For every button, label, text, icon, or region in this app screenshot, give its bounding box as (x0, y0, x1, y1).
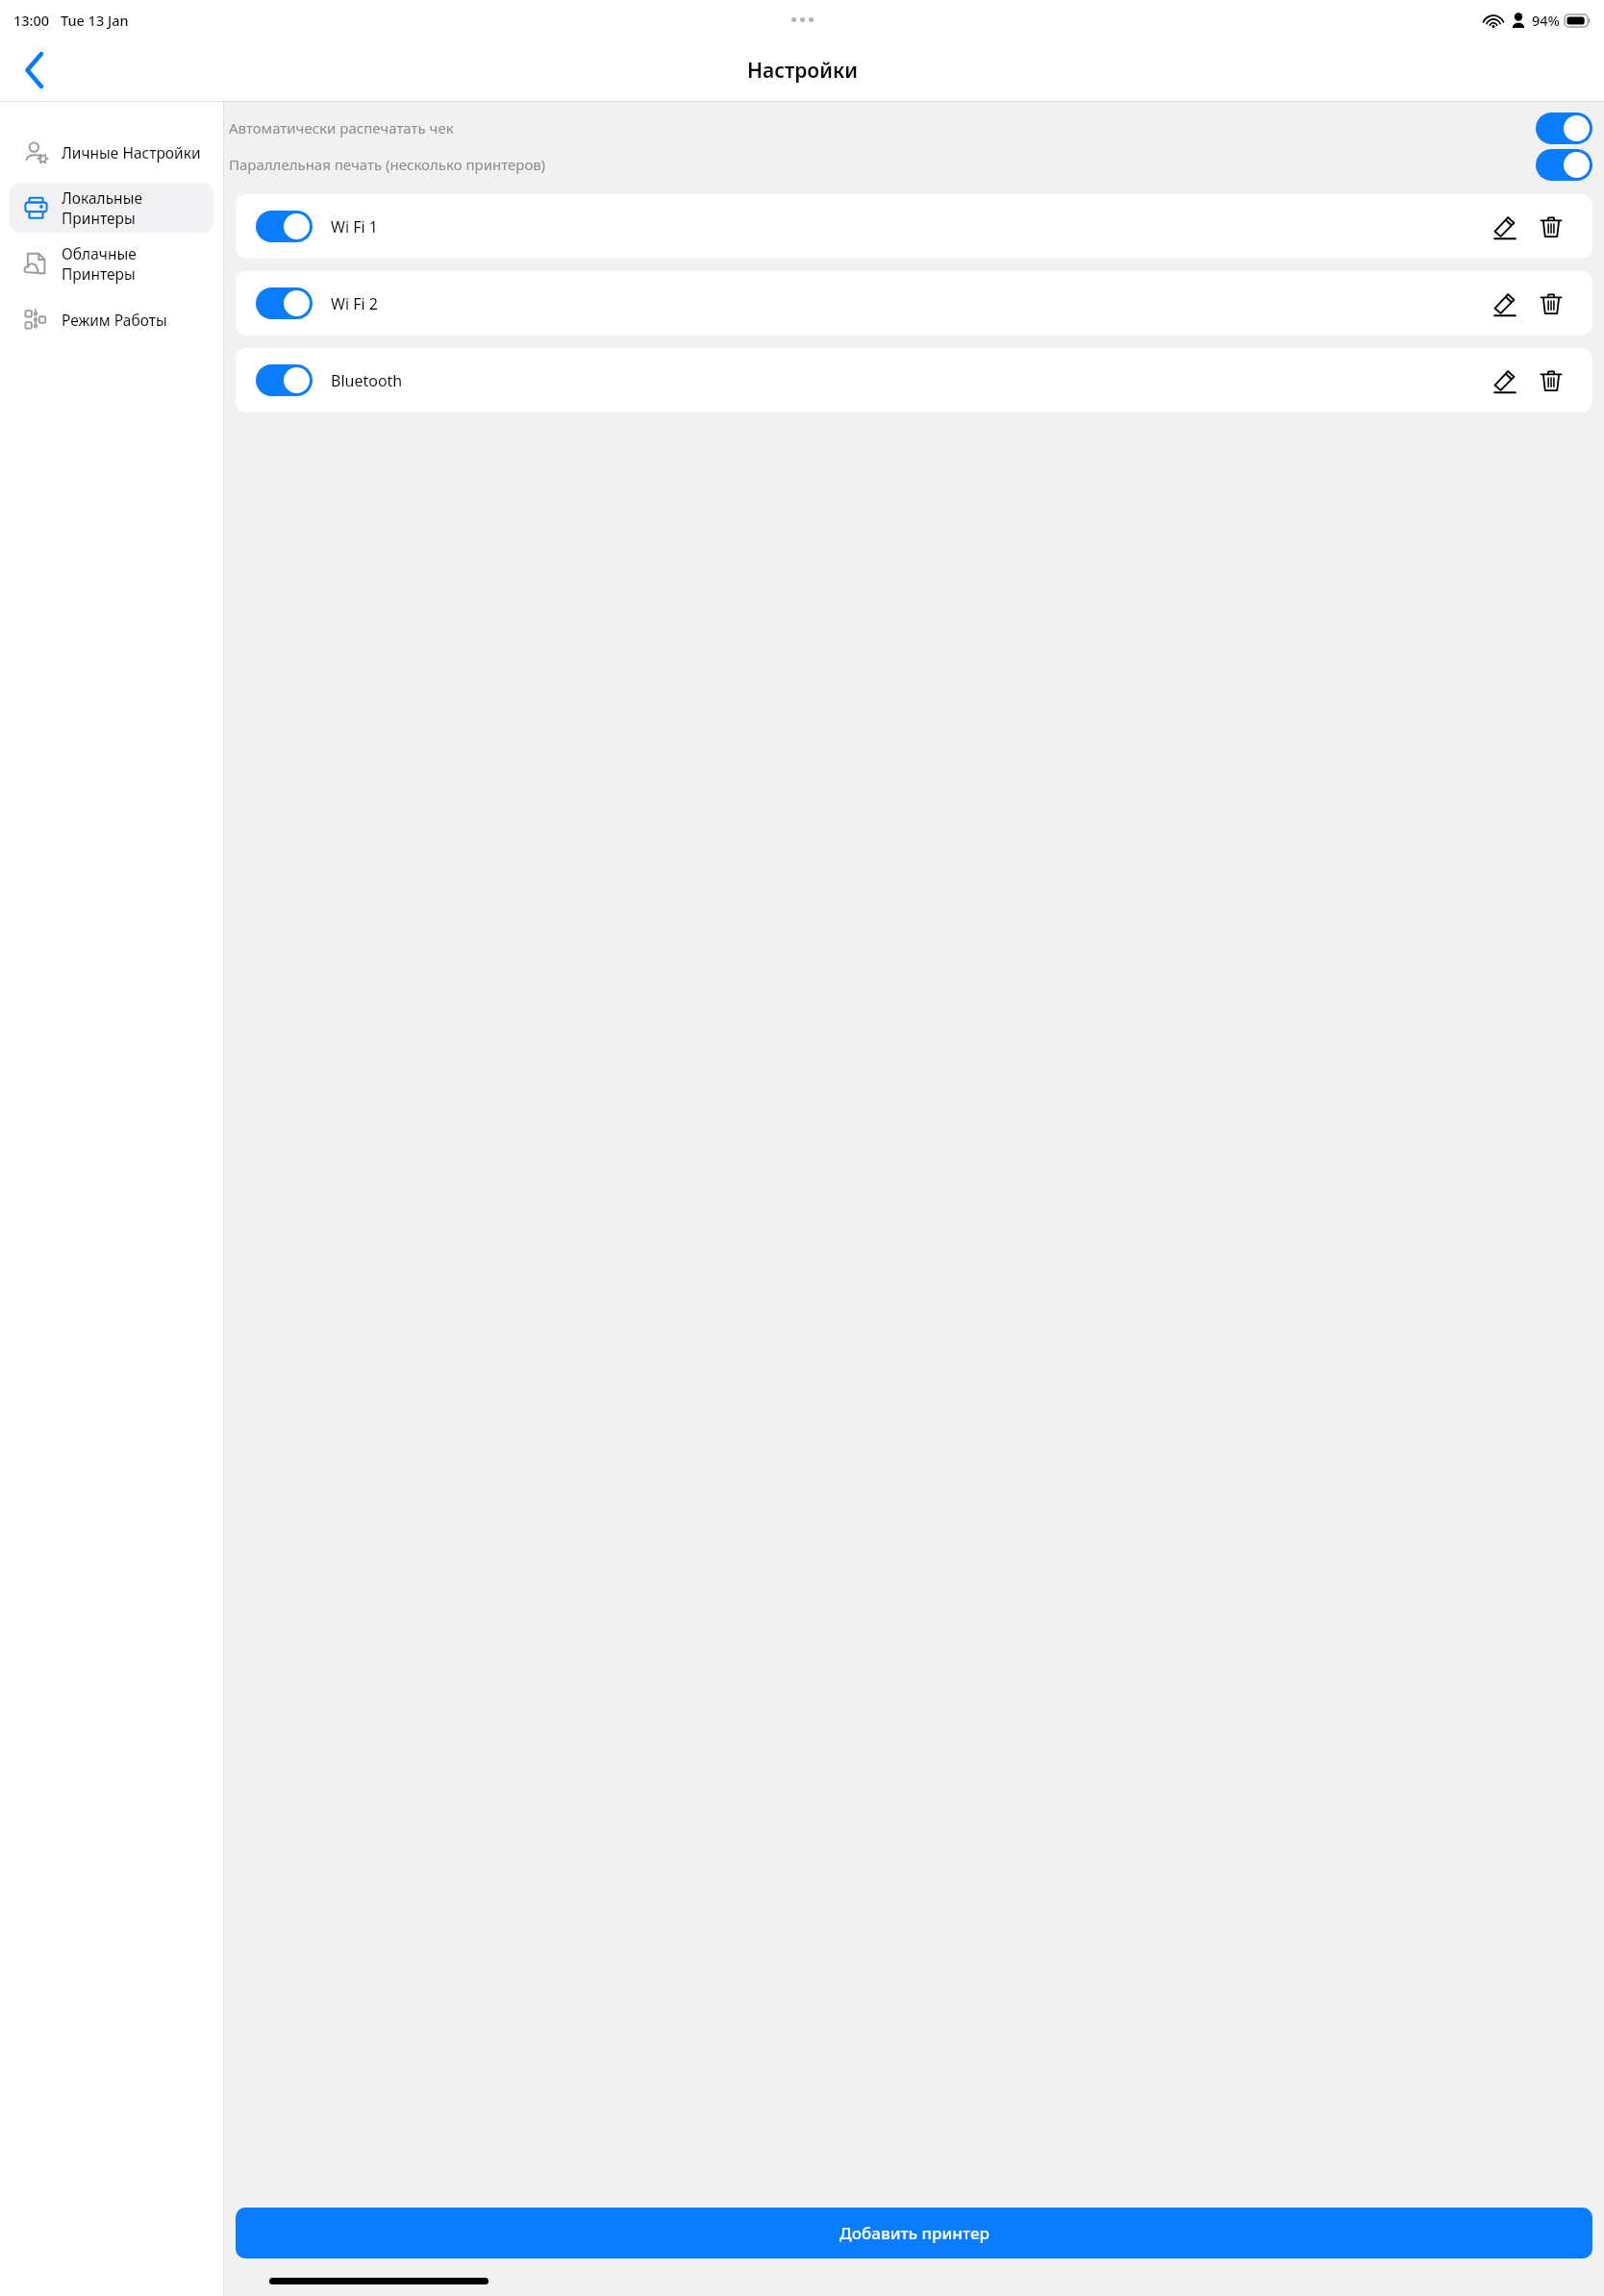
button[interactable] (1536, 149, 1592, 181)
button[interactable]: Delete (1531, 361, 1571, 401)
button[interactable]: Локальные Принтеры (10, 183, 213, 233)
staticText: Автоматически распечатать чек (229, 118, 454, 137)
staticText: Wi Fi 1 (331, 216, 378, 237)
button[interactable]: Edit (1485, 207, 1525, 247)
button[interactable]: Автоматически распечатать чек (224, 110, 1604, 146)
staticText: Настройки (747, 57, 858, 85)
staticText: Личные Настройки (62, 142, 201, 162)
button[interactable]: Back (10, 45, 60, 95)
button[interactable]: Wi Fi 1 (236, 194, 1592, 259)
button[interactable]: Добавить принтер (236, 2208, 1592, 2259)
button[interactable] (1536, 112, 1592, 144)
button[interactable]: Параллельная печать (несколько принтеров… (224, 146, 1604, 183)
staticText: Локальные Принтеры (62, 187, 213, 228)
staticText: Wi Fi 2 (331, 293, 378, 314)
button[interactable]: Личные Настройки (10, 127, 213, 177)
staticText: 13:00 (13, 11, 50, 30)
button[interactable]: Облачные Принтеры (10, 238, 213, 288)
button[interactable]: Режим Работы (10, 294, 213, 344)
button[interactable] (256, 211, 313, 242)
button[interactable]: Edit (1485, 284, 1525, 324)
button[interactable]: Delete (1531, 284, 1571, 324)
staticText: Bluetooth (331, 370, 403, 391)
button[interactable]: Wi Fi 2 (236, 271, 1592, 336)
staticText: Параллельная печать (несколько принтеров… (229, 155, 546, 174)
staticText: Облачные Принтеры (62, 243, 213, 284)
button[interactable]: Edit (1485, 361, 1525, 401)
staticText: Добавить принтер (840, 2222, 990, 2244)
staticText: Режим Работы (62, 310, 167, 330)
button[interactable] (256, 287, 313, 319)
button[interactable]: Delete (1531, 207, 1571, 247)
button[interactable]: Bluetooth (236, 348, 1592, 412)
staticText: 94% (1532, 11, 1560, 30)
staticText: Tue 13 Jan (61, 11, 129, 30)
button[interactable] (256, 364, 313, 396)
